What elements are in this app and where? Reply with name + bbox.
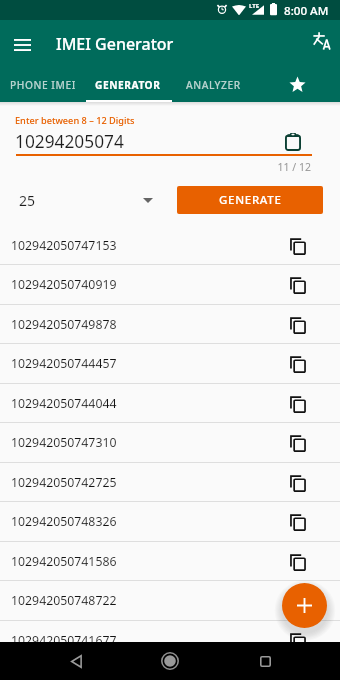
button[interactable]: 102942050740919 xyxy=(0,265,340,304)
button[interactable]: ANALYZER xyxy=(170,68,256,102)
staticText: 10294205074 xyxy=(15,130,124,154)
staticText: 102942050747310 xyxy=(11,434,117,451)
button[interactable]: Copy xyxy=(286,234,310,258)
button[interactable]: Copy xyxy=(286,629,310,653)
button[interactable]: GENERATE xyxy=(177,186,323,214)
staticText: GENERATOR xyxy=(95,78,161,92)
staticText: 102942050742725 xyxy=(11,474,117,491)
button[interactable]: Recents xyxy=(246,642,284,680)
button[interactable]: 102942050748326 xyxy=(0,502,340,541)
button[interactable]: Favorites xyxy=(281,68,313,100)
button[interactable]: Copy xyxy=(286,431,310,455)
staticText: 102942050744457 xyxy=(11,355,117,372)
button[interactable]: Copy xyxy=(286,313,310,337)
staticText: 102942050741586 xyxy=(11,553,117,570)
button[interactable]: Copy xyxy=(286,471,310,495)
button[interactable]: PHONE IMEI xyxy=(0,68,85,102)
button[interactable]: 102942050741677 xyxy=(0,621,340,660)
button[interactable]: 102942050747153 xyxy=(0,226,340,265)
button[interactable]: 102942050744457 xyxy=(0,344,340,383)
button[interactable]: 102942050744044 xyxy=(0,384,340,423)
button[interactable]: Copy xyxy=(286,273,310,297)
staticText: 102942050740919 xyxy=(11,276,117,293)
staticText: 102942050747153 xyxy=(11,237,117,254)
staticText: 102942050748326 xyxy=(11,513,117,530)
staticText: GENERATE xyxy=(219,192,282,208)
staticText: Enter between 8 – 12 Digits xyxy=(15,114,135,127)
button[interactable]: Copy xyxy=(286,589,310,613)
button[interactable]: 102942050748722 xyxy=(0,581,340,620)
button[interactable]: 102942050749878 xyxy=(0,305,340,344)
button[interactable]: GENERATOR xyxy=(85,68,170,102)
staticText: IMEI Generator xyxy=(56,33,174,55)
staticText: 102942050749878 xyxy=(11,316,117,333)
button[interactable]: Copy xyxy=(286,550,310,574)
button[interactable]: Copy xyxy=(286,392,310,416)
staticText: ANALYZER xyxy=(186,78,241,92)
button[interactable]: Translate xyxy=(306,24,338,56)
staticText: LTE xyxy=(249,2,260,10)
button[interactable]: Menu xyxy=(8,30,37,59)
button[interactable]: 25 xyxy=(19,186,153,214)
staticText: 102942050748722 xyxy=(11,592,117,609)
staticText: 11 / 12 xyxy=(0,160,311,174)
staticText: 8:00 AM xyxy=(284,3,329,19)
button[interactable]: Back xyxy=(57,642,95,680)
button[interactable]: Home xyxy=(151,642,189,680)
staticText: PHONE IMEI xyxy=(10,78,76,92)
button[interactable]: Copy xyxy=(286,352,310,376)
button[interactable]: Paste xyxy=(281,130,305,154)
button[interactable]: 102942050745123 xyxy=(0,660,340,680)
button[interactable]: 102942050747310 xyxy=(0,423,340,462)
staticText: 102942050741677 xyxy=(11,632,117,649)
button[interactable]: 102942050742725 xyxy=(0,463,340,502)
staticText: 102942050744044 xyxy=(11,395,117,412)
button[interactable]: 102942050741586 xyxy=(0,542,340,581)
button[interactable]: Add xyxy=(282,583,327,628)
staticText: 25 xyxy=(19,191,36,210)
button[interactable]: Copy xyxy=(286,510,310,534)
